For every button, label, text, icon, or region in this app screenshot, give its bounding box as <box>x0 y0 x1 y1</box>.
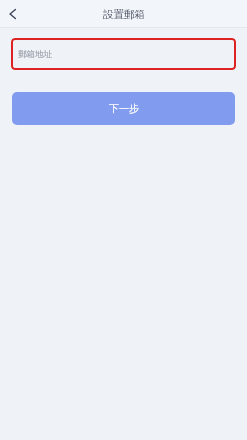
staticText: 設置郵箱 <box>103 8 145 21</box>
button[interactable]: Back <box>0 0 28 28</box>
staticText: 下一步 <box>109 102 139 115</box>
staticText: 郵箱地址 <box>18 49 52 60</box>
button[interactable]: 下一步 <box>12 92 235 125</box>
button[interactable]: 郵箱地址 <box>11 38 236 70</box>
